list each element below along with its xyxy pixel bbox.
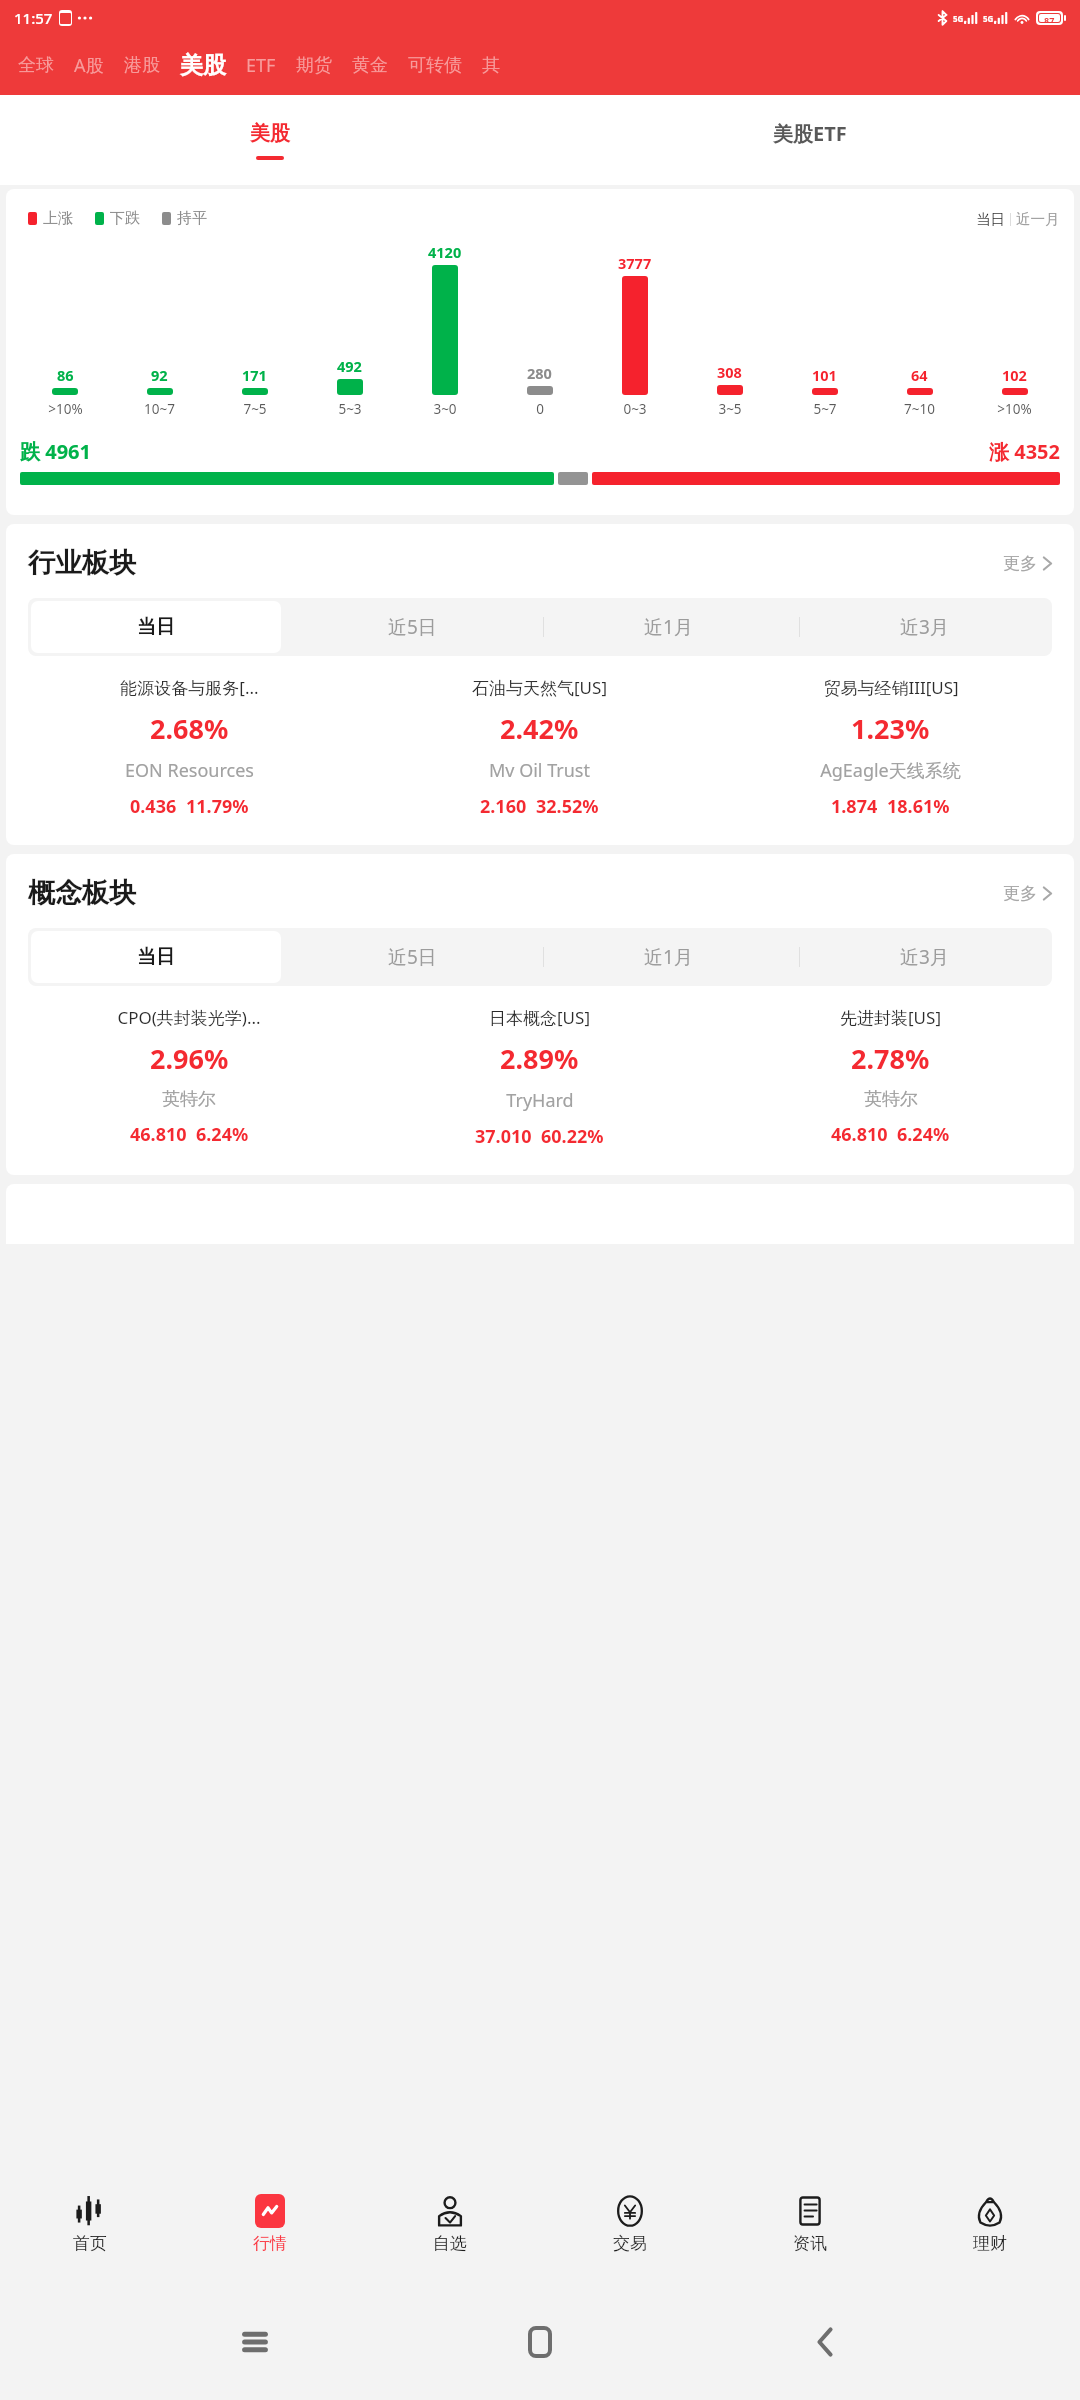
staticText: 近5日 — [388, 614, 437, 640]
button[interactable]: 近5日 — [287, 601, 537, 653]
staticText: 1.874 — [831, 794, 878, 819]
button[interactable]: 贸易与经销III[US] — [715, 676, 1066, 819]
button[interactable]: Home — [510, 2312, 570, 2372]
button[interactable]: 先进封装[US] — [715, 1006, 1066, 1147]
button[interactable]: A股 — [64, 53, 114, 78]
staticText: 黄金 — [352, 54, 388, 77]
staticText: 期货 — [296, 54, 332, 77]
staticText: 更多 — [1003, 883, 1037, 904]
button[interactable]: 更多 — [1003, 553, 1052, 574]
staticText: 46.810 — [831, 1122, 888, 1147]
staticText: 3~0 — [433, 400, 457, 418]
staticText: 2.68% — [150, 710, 229, 747]
button[interactable]: 美股 — [0, 95, 540, 185]
staticText: ETF — [246, 53, 276, 78]
staticText: 首页 — [73, 2233, 107, 2254]
staticText: 92 — [151, 365, 168, 385]
button[interactable]: 首页 — [0, 2187, 180, 2258]
staticText: 2.160 — [480, 794, 527, 819]
staticText: 交易 — [613, 2233, 647, 2254]
staticText: 其 — [482, 54, 500, 77]
staticText: 英特尔 — [162, 1088, 216, 1111]
staticText: 7~10 — [904, 400, 935, 418]
button[interactable]: 可转债 — [398, 54, 472, 77]
staticText: 当日 — [976, 210, 1005, 228]
staticText: 171 — [242, 365, 267, 385]
staticText: 全球 — [18, 54, 54, 77]
button[interactable]: 更多 — [1003, 883, 1052, 904]
staticText: 近一月 — [1016, 210, 1060, 228]
staticText: 46.810 — [130, 1122, 187, 1147]
staticText: 5~3 — [338, 400, 362, 418]
button[interactable]: 美股ETF — [540, 95, 1080, 185]
staticText: 492 — [337, 356, 362, 376]
staticText: 行业板块 — [28, 546, 136, 580]
staticText: 5G — [953, 13, 964, 24]
staticText: EON Resources — [125, 758, 254, 783]
staticText: 280 — [527, 363, 552, 383]
staticText: 2.42% — [500, 710, 579, 747]
staticText: 近3月 — [900, 614, 949, 640]
staticText: 可转债 — [408, 54, 462, 77]
button[interactable]: 日本概念[US] — [364, 1006, 715, 1149]
button[interactable]: 资讯 — [720, 2187, 900, 2258]
staticText: 60.22% — [541, 1124, 604, 1149]
staticText: 当日 — [137, 615, 175, 639]
staticText: Mv Oil Trust — [489, 758, 590, 783]
button[interactable]: 理财 — [900, 2187, 1080, 2258]
staticText: 18.61% — [887, 794, 950, 819]
staticText: AgEagle天线系统 — [820, 758, 961, 783]
staticText: 11.79% — [186, 794, 249, 819]
button[interactable]: 能源设备与服务[... — [14, 676, 364, 819]
staticText: 美股 — [180, 51, 226, 80]
staticText: A股 — [74, 53, 104, 78]
button[interactable]: 当日 — [31, 931, 281, 983]
staticText: 32.52% — [536, 794, 599, 819]
staticText: >10% — [997, 400, 1032, 418]
staticText: 6.24% — [196, 1122, 249, 1147]
button[interactable]: 石油与天然气[US] — [364, 676, 715, 819]
button[interactable]: 期货 — [286, 54, 342, 77]
staticText: 持平 — [177, 209, 207, 228]
button[interactable]: 近1月 — [543, 931, 793, 983]
staticText: 6.24% — [897, 1122, 950, 1147]
staticText: >10% — [48, 400, 83, 418]
button[interactable]: 自选 — [360, 2187, 540, 2258]
button[interactable]: 美股 — [170, 51, 236, 80]
button[interactable]: 近5日 — [287, 931, 537, 983]
staticText: 日本概念[US] — [489, 1006, 590, 1029]
button[interactable]: 近3月 — [799, 601, 1049, 653]
button[interactable]: Recent apps — [225, 2312, 285, 2372]
staticText: 1.23% — [851, 710, 930, 747]
button[interactable]: 交易 — [540, 2187, 720, 2258]
button[interactable]: 当日 — [31, 601, 281, 653]
staticText: 2.96% — [150, 1040, 229, 1077]
staticText: CPO(共封装光学)... — [117, 1006, 261, 1029]
button[interactable]: 当日 — [976, 210, 1005, 228]
staticText: 美股 — [250, 121, 290, 146]
button[interactable]: 全球 — [8, 54, 64, 77]
staticText: 近1月 — [644, 614, 693, 640]
button[interactable]: 港股 — [114, 54, 170, 77]
staticText: 10~7 — [144, 400, 175, 418]
button[interactable]: 黄金 — [342, 54, 398, 77]
staticText: 3~5 — [718, 400, 742, 418]
staticText: 当日 — [137, 945, 175, 969]
button[interactable]: 行情 — [180, 2187, 360, 2258]
button[interactable]: CPO(共封装光学)... — [14, 1006, 364, 1147]
staticText: 理财 — [973, 2233, 1007, 2254]
staticText: 102 — [1002, 365, 1027, 385]
button[interactable]: 近3月 — [799, 931, 1049, 983]
staticText: TryHard — [506, 1088, 574, 1113]
staticText: 0~3 — [623, 400, 647, 418]
staticText: 英特尔 — [864, 1088, 918, 1111]
button[interactable]: 近1月 — [543, 601, 793, 653]
staticText: 308 — [717, 362, 742, 382]
button[interactable]: ETF — [236, 53, 286, 78]
button[interactable]: 其 — [472, 54, 510, 77]
staticText: 近3月 — [900, 944, 949, 970]
button[interactable]: Back — [795, 2312, 855, 2372]
staticText: 涨 4352 — [989, 438, 1060, 465]
button[interactable]: 近一月 — [1016, 210, 1060, 228]
staticText: 5G — [983, 13, 994, 24]
